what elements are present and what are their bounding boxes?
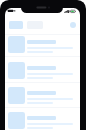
button[interactable]: Profile — [70, 22, 76, 28]
button[interactable] — [5, 34, 80, 59]
button[interactable] — [5, 110, 80, 130]
button[interactable] — [5, 60, 80, 85]
button[interactable] — [5, 85, 80, 110]
button[interactable] — [9, 21, 23, 29]
